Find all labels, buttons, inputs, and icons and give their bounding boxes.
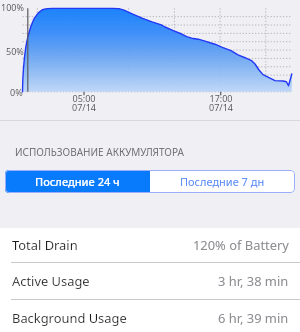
staticText: 17:00 <box>191 92 251 104</box>
staticText: Background Usage <box>12 309 127 327</box>
button[interactable]: Total Drain <box>0 228 300 262</box>
staticText: 07/14 <box>54 101 114 113</box>
button[interactable]: Active Usage <box>0 263 300 299</box>
staticText: 0% <box>10 86 23 98</box>
staticText: 05:00 <box>54 92 114 104</box>
button[interactable]: Background Usage <box>0 300 300 332</box>
staticText: Последние 7 дн <box>180 174 265 189</box>
staticText: Total Drain <box>12 236 78 254</box>
staticText: 50% <box>6 45 24 57</box>
staticText: 3 hr, 38 min <box>218 272 289 290</box>
staticText: 07/14 <box>191 101 251 113</box>
staticText: Active Usage <box>12 272 90 290</box>
staticText: 6 hr, 39 min <box>218 309 289 327</box>
staticText: 120% of Battery <box>193 236 289 254</box>
staticText: 100% <box>1 1 24 13</box>
button[interactable]: Последние 24 ч <box>5 170 150 193</box>
staticText: Последние 24 ч <box>35 174 120 189</box>
button[interactable]: Последние 7 дн <box>150 170 295 193</box>
staticText: ИСПОЛЬЗОВАНИЕ АККУМУЛЯТОРА <box>15 145 184 159</box>
